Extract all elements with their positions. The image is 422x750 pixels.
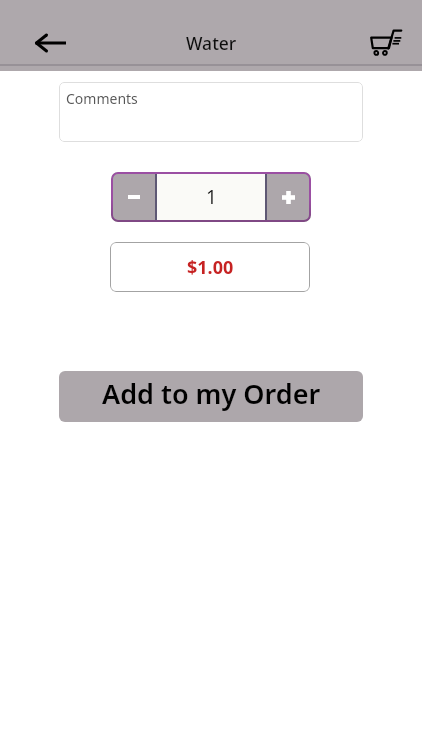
button[interactable]: Add to my Order: [59, 371, 363, 422]
button[interactable]: Cart: [364, 24, 410, 62]
staticText: Water: [186, 31, 237, 55]
staticText: $1.00: [187, 255, 234, 280]
staticText: 1: [206, 184, 217, 210]
button[interactable]: Decrease quantity: [111, 172, 157, 222]
button[interactable]: Comments: [59, 82, 363, 142]
staticText: Add to my Order: [102, 375, 321, 412]
button[interactable]: Back: [24, 31, 78, 57]
staticText: Comments: [66, 89, 138, 108]
button[interactable]: $1.00: [110, 242, 310, 292]
button[interactable]: Increase quantity: [265, 172, 311, 222]
